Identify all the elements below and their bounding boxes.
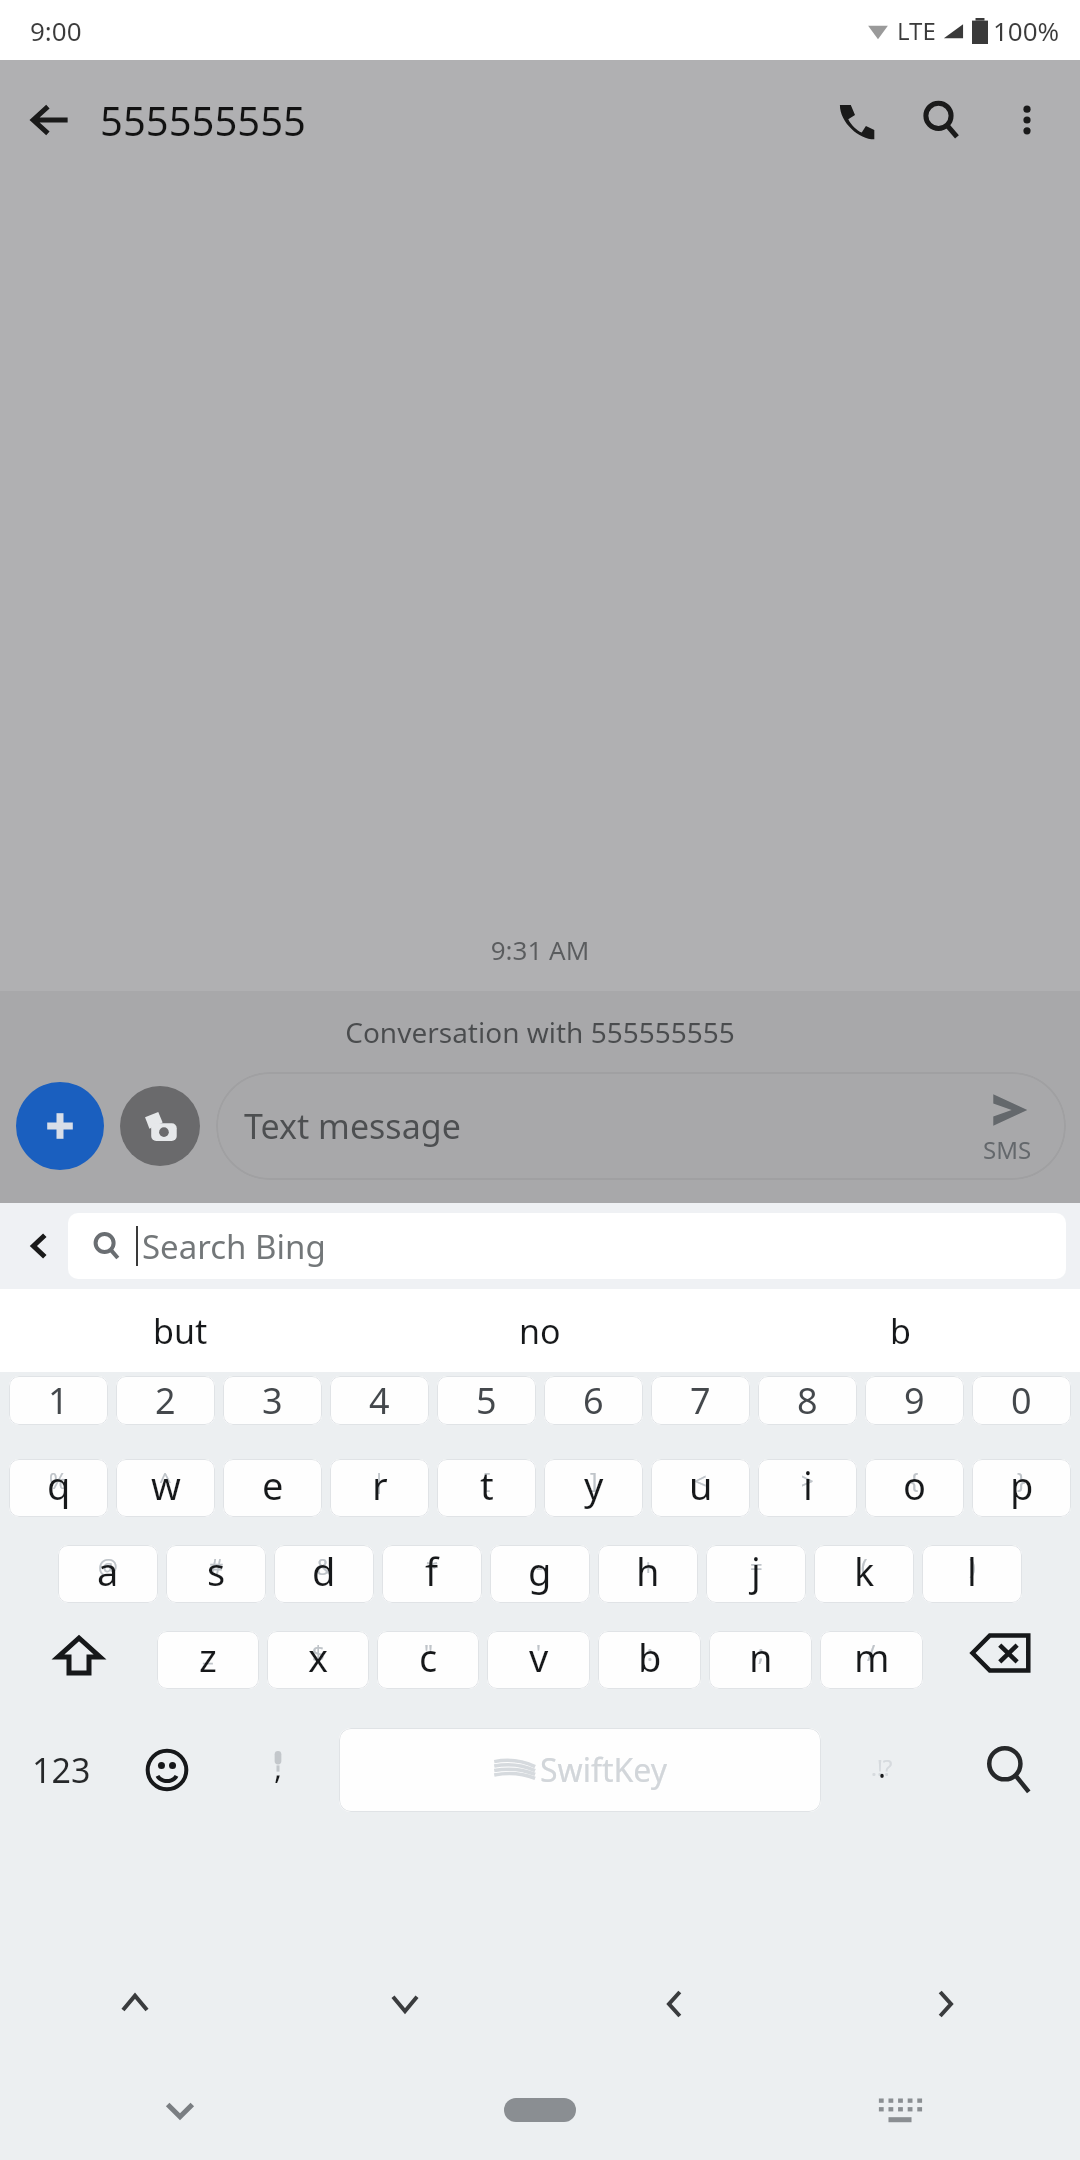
button[interactable]: More options — [984, 77, 1070, 163]
button[interactable]: : — [598, 1631, 701, 1689]
button[interactable]: Search Bing — [68, 1213, 1066, 1279]
button[interactable]: Search — [898, 77, 984, 163]
button[interactable]: @ — [58, 1545, 158, 1603]
button[interactable]: ~ — [223, 1459, 322, 1517]
staticText: # — [209, 1551, 224, 1581]
button[interactable]: Back — [10, 1216, 70, 1276]
button[interactable]: Call — [812, 77, 898, 163]
button[interactable]: Home — [360, 2059, 720, 2160]
button[interactable]: / — [820, 1631, 923, 1689]
button[interactable]: Emoji — [117, 1747, 217, 1793]
button[interactable]: } — [972, 1459, 1071, 1517]
button[interactable]: < — [651, 1459, 750, 1517]
staticText: c — [419, 1631, 438, 1683]
staticText: d — [312, 1545, 336, 1597]
button[interactable]: 6 — [544, 1376, 643, 1425]
staticText: % — [49, 1465, 68, 1495]
staticText: * — [426, 1551, 439, 1581]
staticText: y — [584, 1459, 604, 1511]
staticText: h — [636, 1545, 660, 1597]
staticText: $ — [312, 1637, 325, 1667]
button[interactable]: no — [360, 1308, 720, 1354]
button[interactable]: ' — [487, 1631, 590, 1689]
staticText: 123 — [32, 1747, 91, 1793]
staticText: 7 — [690, 1376, 711, 1425]
staticText: ~ — [266, 1465, 279, 1495]
button[interactable]: ^ — [116, 1459, 215, 1517]
staticText: ] — [590, 1465, 598, 1495]
button[interactable]: 5 — [437, 1376, 536, 1425]
staticText: LTE — [897, 14, 936, 47]
button[interactable]: Backspace — [927, 1631, 1075, 1675]
button[interactable]: Search — [943, 1744, 1075, 1796]
button[interactable]: Switch keyboard — [720, 2059, 1080, 2160]
button[interactable]: Camera — [120, 1086, 200, 1166]
staticText: no — [519, 1308, 561, 1354]
staticText: u — [689, 1459, 713, 1511]
staticText: 9:31 AM — [0, 932, 1080, 967]
button[interactable]: Comma and voice input — [217, 1747, 339, 1794]
button[interactable]: Back — [14, 84, 86, 156]
button[interactable]: # — [166, 1545, 266, 1603]
staticText: { — [910, 1465, 919, 1495]
button[interactable]: Right — [810, 1949, 1080, 2059]
button[interactable]: ; — [709, 1631, 812, 1689]
staticText: p — [1010, 1459, 1034, 1511]
button[interactable]: & — [274, 1545, 374, 1603]
button[interactable]: 2 — [116, 1376, 215, 1425]
button[interactable]: + — [598, 1545, 698, 1603]
button[interactable]: * — [382, 1545, 482, 1603]
staticText: . — [878, 1746, 887, 1787]
staticText: ) — [969, 1551, 976, 1581]
button[interactable]: { — [865, 1459, 964, 1517]
button[interactable]: 3 — [223, 1376, 322, 1425]
button[interactable]: 7 — [651, 1376, 750, 1425]
button[interactable]: b — [720, 1308, 1080, 1354]
staticText: 9 — [904, 1376, 925, 1425]
button[interactable]: % — [9, 1459, 108, 1517]
button[interactable]: 9 — [865, 1376, 964, 1425]
button[interactable]: = — [706, 1545, 806, 1603]
button[interactable]: but — [0, 1308, 360, 1354]
staticText: but — [153, 1308, 208, 1354]
button[interactable]: Down — [270, 1949, 540, 2059]
button[interactable]: 123 — [5, 1747, 117, 1793]
staticText: s — [207, 1545, 226, 1597]
staticText: t — [480, 1459, 494, 1511]
button[interactable]: 4 — [330, 1376, 429, 1425]
staticText: - — [536, 1551, 544, 1581]
button[interactable]: Period — [821, 1746, 943, 1795]
staticText: } — [1017, 1465, 1026, 1495]
button[interactable]: ( — [814, 1545, 914, 1603]
button[interactable]: | — [330, 1459, 429, 1517]
button[interactable]: Left — [540, 1949, 810, 2059]
button[interactable]: Text message — [216, 1072, 1066, 1180]
button[interactable]: " — [377, 1631, 479, 1689]
button[interactable]: ) — [922, 1545, 1022, 1603]
button[interactable]: Up — [0, 1949, 270, 2059]
staticText: .!? — [871, 1752, 893, 1782]
button[interactable]: _ — [157, 1631, 259, 1689]
button[interactable]: $ — [267, 1631, 369, 1689]
button[interactable]: 8 — [758, 1376, 857, 1425]
button[interactable]: Hide keyboard — [0, 2059, 360, 2160]
button[interactable]: Shift — [5, 1631, 153, 1681]
staticText: SwiftKey — [540, 1748, 668, 1792]
staticText: q — [47, 1459, 71, 1511]
staticText: b — [890, 1308, 911, 1354]
staticText: n — [749, 1631, 773, 1683]
staticText: & — [316, 1551, 333, 1581]
staticText: ^ — [159, 1465, 172, 1495]
button[interactable]: Add attachment — [16, 1082, 104, 1170]
button[interactable]: ] — [544, 1459, 643, 1517]
button[interactable]: > — [758, 1459, 857, 1517]
staticText: v — [529, 1631, 549, 1683]
button[interactable]: Space — [339, 1728, 821, 1812]
button[interactable]: [ — [437, 1459, 536, 1517]
staticText: f — [425, 1545, 439, 1597]
button[interactable]: 1 — [9, 1376, 108, 1425]
button[interactable]: - — [490, 1545, 590, 1603]
staticText: ; — [758, 1637, 764, 1667]
button[interactable]: 0 — [972, 1376, 1071, 1425]
staticText: 555555555 — [100, 93, 306, 147]
